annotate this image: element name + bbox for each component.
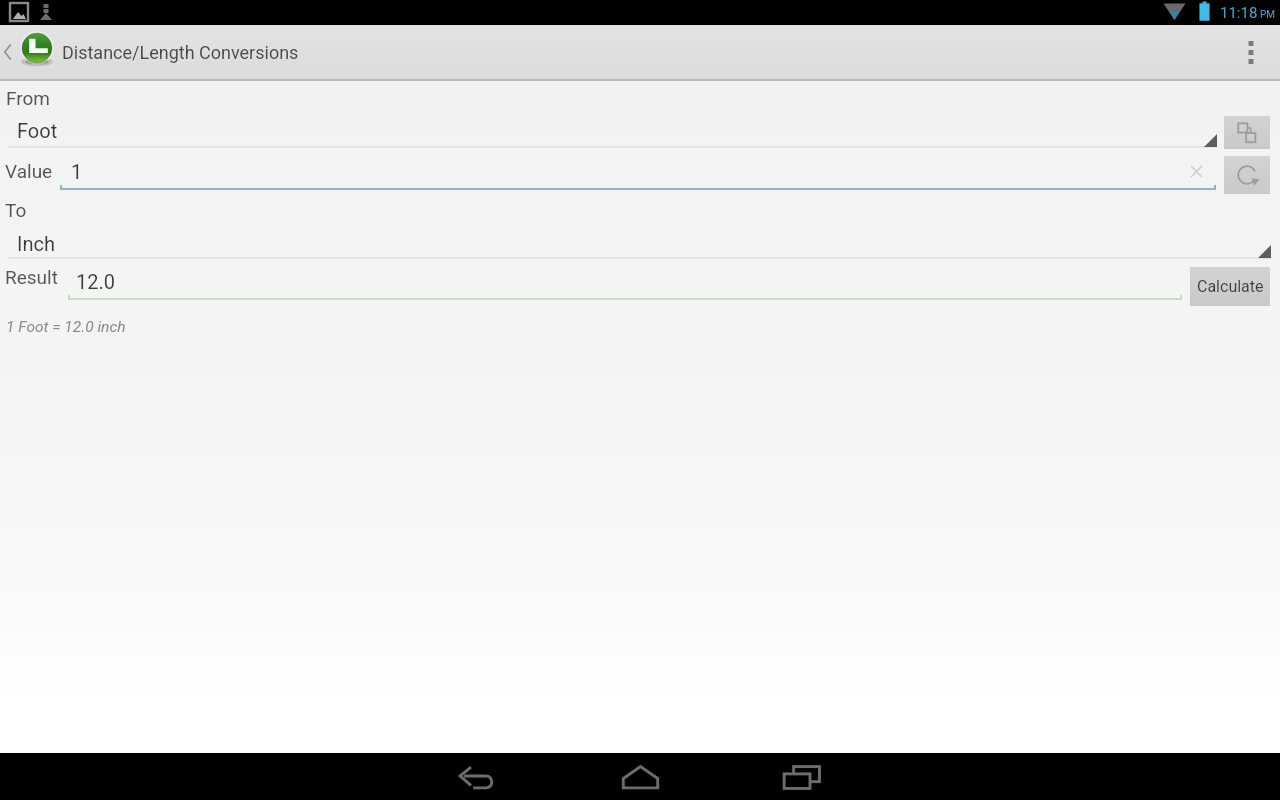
button[interactable]: Back: [421, 753, 531, 800]
staticText: Distance/Length Conversions: [62, 42, 299, 63]
button[interactable]: 12.0: [68, 269, 1178, 302]
button[interactable]: Calculate: [1190, 267, 1270, 306]
button[interactable]: Clear value: [1190, 165, 1203, 178]
button[interactable]: More options: [1228, 25, 1280, 79]
staticText: To: [5, 199, 27, 221]
button[interactable]: Reset: [1224, 156, 1270, 194]
staticText: Inch: [17, 232, 55, 255]
button[interactable]: Inch: [0, 224, 1280, 259]
button[interactable]: Navigate up: [0, 39, 14, 65]
button[interactable]: Home: [585, 753, 695, 800]
staticText: From: [6, 87, 51, 109]
staticText: PM: [1260, 9, 1276, 21]
staticText: Foot: [17, 119, 58, 142]
button[interactable]: Navigate up: [0, 25, 299, 79]
button[interactable]: Swap units: [1224, 116, 1270, 149]
button[interactable]: Recent apps: [747, 753, 857, 800]
staticText: Result: [5, 266, 58, 288]
staticText: 1 Foot = 12.0 inch: [6, 318, 126, 336]
staticText: Calculate: [1197, 277, 1264, 296]
staticText: 12.0: [76, 270, 115, 293]
staticText: 1: [71, 160, 83, 183]
button[interactable]: 1: [60, 155, 1190, 189]
button[interactable]: Foot: [0, 111, 1280, 146]
staticText: 11:18: [1220, 4, 1258, 22]
staticText: Value: [5, 160, 53, 182]
